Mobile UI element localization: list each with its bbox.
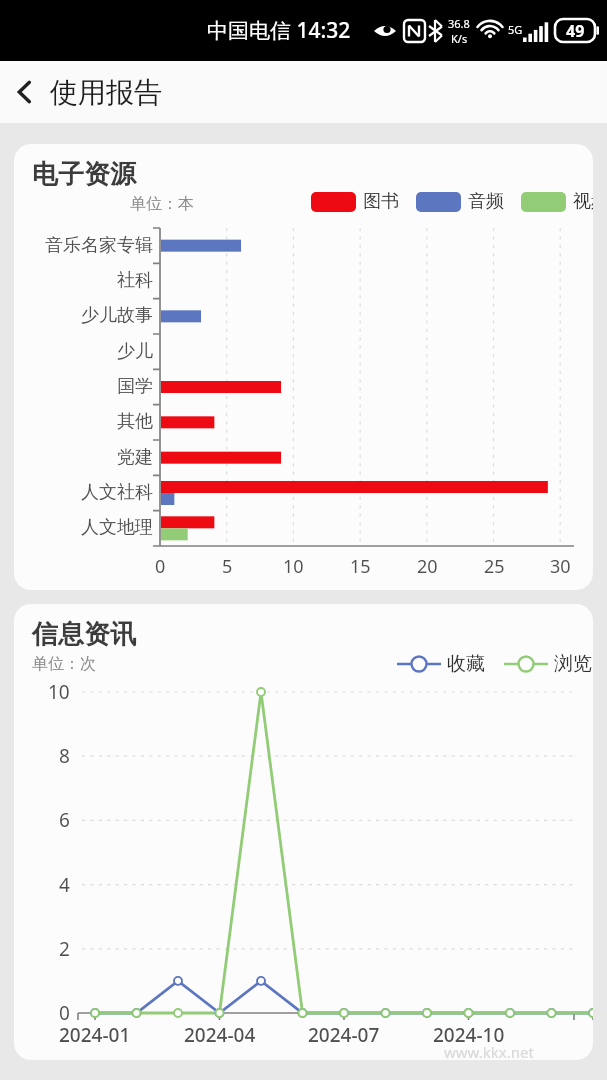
staticText: 30	[550, 554, 571, 579]
staticText: 0	[59, 1000, 70, 1026]
staticText: 中国电信 14:32	[207, 16, 351, 45]
staticText: 浏览	[554, 652, 592, 676]
button[interactable]: 收藏	[397, 652, 485, 676]
staticText: 人文地理	[23, 516, 153, 539]
staticText: 2024-04	[184, 1022, 256, 1048]
staticText: 信息资讯	[32, 618, 136, 651]
staticText: 6	[59, 807, 70, 833]
button[interactable]: Back	[0, 61, 50, 123]
staticText: 使用报告	[50, 75, 162, 110]
staticText: www.kkx.net	[444, 1042, 534, 1060]
staticText: 收藏	[447, 652, 485, 676]
staticText: 4	[59, 872, 70, 898]
staticText: 0	[155, 554, 166, 579]
button[interactable]: 电子资源	[14, 144, 593, 590]
staticText: 8	[59, 743, 70, 769]
staticText: 其他	[23, 410, 153, 433]
staticText: 音频	[468, 190, 504, 213]
staticText: 10	[48, 679, 70, 705]
staticText: 少儿故事	[23, 304, 153, 327]
staticText: 音乐名家专辑	[23, 234, 153, 257]
staticText: 党建	[23, 446, 153, 469]
staticText: 少儿	[23, 340, 153, 363]
staticText: 5	[222, 554, 233, 579]
staticText: K/s	[451, 31, 468, 46]
staticText: 单位：本	[130, 194, 194, 214]
staticText: 人文社科	[23, 481, 153, 504]
staticText: 电子资源	[32, 158, 136, 191]
staticText: 5G	[508, 22, 523, 37]
staticText: 25	[484, 554, 505, 579]
staticText: 49	[566, 20, 585, 42]
staticText: 2024-10	[433, 1022, 505, 1048]
staticText: 15	[350, 554, 371, 579]
button[interactable]: 音频	[416, 190, 504, 213]
staticText: 图书	[363, 190, 399, 213]
staticText: 2024-07	[308, 1022, 380, 1048]
staticText: 视频	[573, 190, 593, 213]
staticText: 社科	[23, 269, 153, 292]
staticText: 20	[417, 554, 438, 579]
button[interactable]: 信息资讯	[14, 604, 593, 1060]
button[interactable]: 视频	[521, 190, 593, 213]
staticText: 10	[283, 554, 304, 579]
staticText: 36.8	[448, 16, 470, 31]
button[interactable]: 图书	[311, 190, 399, 213]
staticText: 国学	[23, 375, 153, 398]
staticText: 2	[59, 936, 70, 962]
staticText: 2024-01	[59, 1022, 131, 1048]
button[interactable]: 浏览	[504, 652, 592, 676]
staticText: 单位：次	[32, 654, 96, 674]
